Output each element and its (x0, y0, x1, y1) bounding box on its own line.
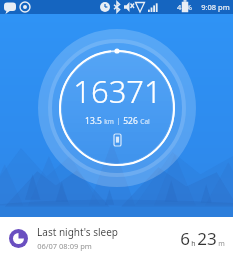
button[interactable]: Daily step goal progress (0, 14, 233, 217)
staticText: Last night's sleep (37, 225, 118, 239)
staticText: 06/07 08:09 pm (37, 241, 92, 251)
staticText: m (218, 239, 225, 249)
staticText: 9:08 pm (201, 2, 230, 12)
staticText: 41% (177, 2, 192, 12)
staticText: 23 (197, 227, 217, 250)
staticText: 6 (180, 227, 190, 250)
staticText: h (191, 239, 196, 249)
staticText: km (104, 117, 114, 126)
staticText: Cal (140, 117, 150, 126)
button[interactable]: Last night's sleep (0, 217, 233, 259)
staticText: 526 (123, 115, 138, 127)
staticText: 13.5 (85, 115, 102, 127)
staticText: 16371 (73, 70, 162, 112)
